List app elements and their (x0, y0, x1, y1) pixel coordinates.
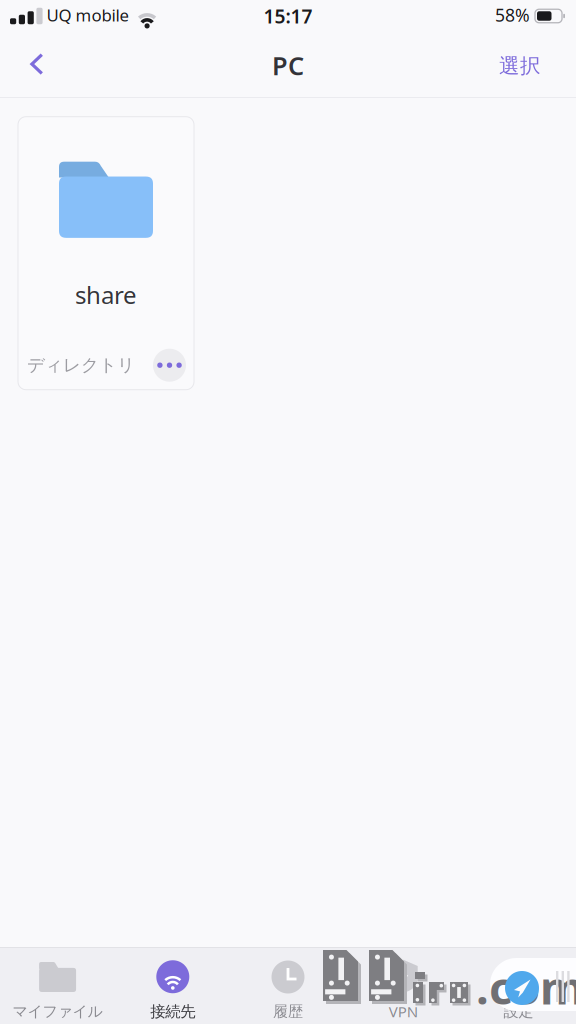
staticText: マイファイル (13, 1002, 103, 1021)
staticText: ディレクトリ (27, 354, 135, 376)
staticText: UQ mobile (47, 4, 129, 26)
staticText: 15:17 (263, 3, 312, 29)
button[interactable]: More options (153, 349, 186, 382)
staticText: 設定 (503, 1002, 533, 1021)
button[interactable]: 履歴 (230, 946, 346, 1024)
staticText: .com (476, 956, 576, 1018)
staticText: share (75, 279, 137, 311)
button[interactable]: マイファイル (0, 946, 115, 1024)
button[interactable]: VPN (346, 945, 461, 1024)
staticText: 58% (495, 3, 530, 27)
staticText: PC (272, 48, 304, 83)
staticText: 接続先 (150, 1002, 195, 1021)
staticText: VPN (389, 1001, 418, 1022)
staticText: 履歴 (273, 1002, 303, 1021)
staticText: 選択 (499, 53, 541, 79)
button[interactable]: 接続先 (115, 946, 230, 1024)
button[interactable]: 設定 (461, 946, 576, 1024)
button[interactable]: share (18, 117, 194, 390)
button[interactable]: Back (0, 37, 61, 96)
button[interactable]: 選択 (481, 37, 576, 100)
